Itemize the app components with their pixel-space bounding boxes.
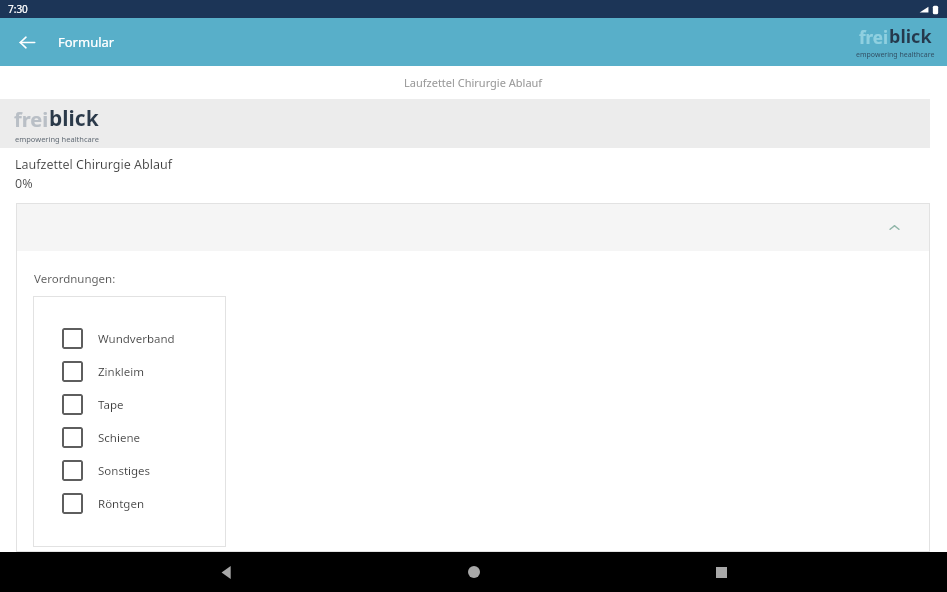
button[interactable]: Tape <box>33 388 226 421</box>
staticText: Wundverband <box>98 331 175 347</box>
button[interactable]: Zinkleim <box>33 355 226 388</box>
staticText: frei <box>14 106 49 133</box>
button[interactable]: Recent apps <box>700 552 742 592</box>
button[interactable]: Sonstiges <box>33 454 226 487</box>
button[interactable]: Home <box>453 552 495 592</box>
staticText: Röntgen <box>98 496 145 512</box>
button[interactable]: Röntgen <box>33 487 226 520</box>
staticText: Laufzettel Chirurgie Ablauf <box>15 156 172 173</box>
staticText: Schiene <box>98 430 140 446</box>
staticText: Tape <box>98 397 124 413</box>
staticText: empowering healthcare <box>856 50 935 60</box>
staticText: Laufzettel Chirurgie Ablauf <box>404 75 543 90</box>
other: Collapse section <box>884 217 904 237</box>
button[interactable]: Back <box>205 552 247 592</box>
staticText: frei <box>859 26 889 49</box>
staticText: empowering healthcare <box>15 134 99 144</box>
button[interactable]: Collapse section <box>16 203 930 251</box>
staticText: blick <box>49 104 99 133</box>
staticText: 0% <box>15 175 33 192</box>
staticText: Verordnungen: <box>34 271 116 287</box>
staticText: 7:30 <box>8 2 28 16</box>
staticText: Formular <box>58 33 115 51</box>
staticText: Sonstiges <box>98 463 151 479</box>
button[interactable]: Schiene <box>33 421 226 454</box>
button[interactable]: Wundverband <box>33 322 226 355</box>
button[interactable]: Back <box>12 27 42 57</box>
staticText: blick <box>889 24 932 49</box>
staticText: Zinkleim <box>98 364 144 380</box>
